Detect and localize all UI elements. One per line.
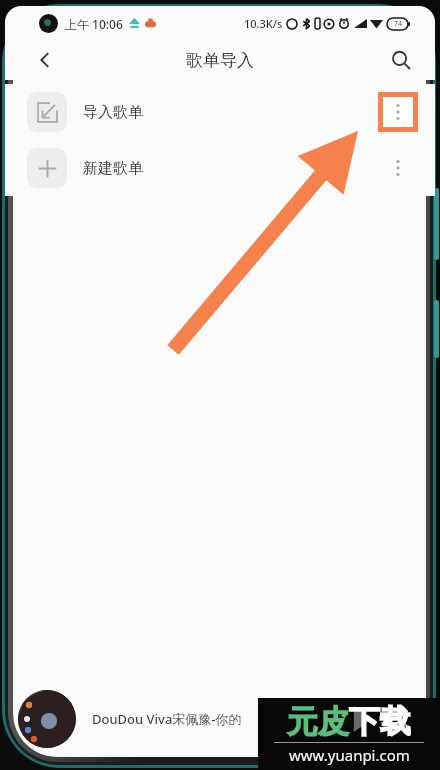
staticText: www.yuanpi.com: [289, 745, 410, 765]
staticText: 上午 10:06: [65, 16, 123, 32]
staticText: 下载: [349, 702, 411, 741]
staticText: 歌单导入: [186, 50, 254, 71]
button[interactable]: Search: [381, 40, 421, 80]
button[interactable]: 新建歌单: [5, 140, 435, 196]
staticText: 10.3K/s: [244, 16, 283, 31]
button[interactable]: 导入歌单: [5, 84, 435, 140]
staticText: 74: [394, 19, 403, 29]
button[interactable]: More options: [378, 148, 418, 188]
button[interactable]: Now playing album art: [18, 690, 76, 748]
button[interactable]: More options: [383, 97, 413, 127]
staticText: DouDou Viva宋佩豫-你的: [92, 710, 242, 728]
button[interactable]: Back: [25, 40, 65, 80]
staticText: 新建歌单: [83, 159, 143, 178]
staticText: 元皮: [287, 702, 349, 741]
staticText: 导入歌单: [83, 103, 143, 122]
